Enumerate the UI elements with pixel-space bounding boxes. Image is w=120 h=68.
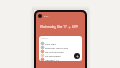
button[interactable]: Task Alert (41, 41, 80, 45)
button[interactable]: Add task (74, 53, 80, 59)
button[interactable]: Nathan / 1:1 (41, 57, 80, 61)
button[interactable]: Reporter launch pos (41, 45, 80, 49)
staticText: 63°F (72, 25, 79, 29)
staticText: TODAY (41, 37, 49, 40)
staticText: Nathan / 1:1 (45, 58, 60, 61)
staticText: Go-to-sales guid (45, 50, 64, 53)
staticText: Task Alert (45, 42, 57, 45)
button[interactable]: Go-to-sales guid (41, 49, 80, 53)
staticText: Reporter launch pos (45, 46, 69, 49)
staticText: 9:30 (44, 15, 49, 18)
staticText: Wednesday, Mar 17 (40, 25, 67, 29)
button[interactable]: Tie wireframe (41, 53, 80, 57)
staticText: Tie wireframe (45, 54, 61, 57)
